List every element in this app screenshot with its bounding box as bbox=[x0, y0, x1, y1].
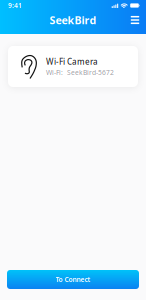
button[interactable]: Wi-Fi Camera bbox=[8, 46, 138, 87]
button[interactable]: To Connect bbox=[7, 270, 139, 289]
staticText: To Connect bbox=[55, 275, 90, 284]
staticText: Wi-Fi Camera bbox=[46, 56, 98, 67]
staticText: 9:41 bbox=[8, 1, 22, 10]
button[interactable]: Menu bbox=[127, 12, 143, 28]
staticText: Wi-Fi: SeekBird-5672 bbox=[46, 68, 114, 77]
staticText: SeekBird bbox=[49, 13, 96, 27]
